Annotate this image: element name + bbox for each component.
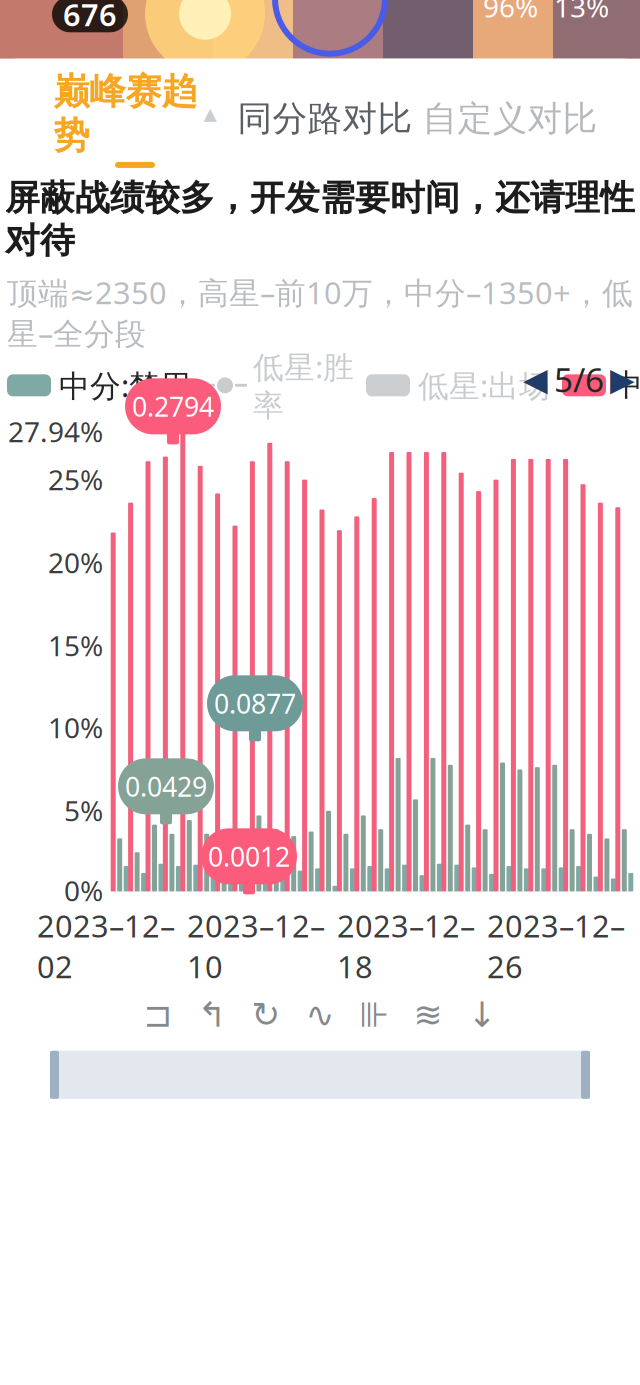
staticText: 低星:胜率 <box>253 346 354 424</box>
button[interactable]: 巅峰赛趋势 <box>37 83 232 155</box>
staticText: 0.2794 <box>132 389 214 424</box>
button[interactable]: Crop <box>134 993 182 1037</box>
button[interactable]: Layers <box>404 993 452 1037</box>
staticText: ▲ <box>203 104 216 124</box>
staticText: 屏蔽战绩较多，开发需要时间，还请理性对待 <box>5 177 635 262</box>
staticText: ≋ <box>413 995 442 1034</box>
staticText: 0% <box>64 872 103 909</box>
button[interactable]: Next page <box>610 361 635 397</box>
staticText: ↓ <box>467 995 496 1034</box>
button[interactable]: Undo <box>188 993 236 1037</box>
staticText: 5% <box>64 792 103 829</box>
button[interactable]: 同分路对比 <box>232 83 417 155</box>
staticText: 13% <box>554 0 609 25</box>
staticText: ⊪ <box>359 995 389 1034</box>
staticText: 25% <box>48 461 103 498</box>
staticText: 中 <box>612 366 640 404</box>
staticText: ▶ <box>610 361 635 397</box>
button[interactable]: Bar chart <box>350 993 398 1037</box>
staticText: ◀ <box>523 361 548 397</box>
staticText: 20% <box>48 544 103 581</box>
staticText: ↻ <box>251 995 280 1034</box>
staticText: 自定义对比 <box>422 97 597 140</box>
staticText: 顶端≈2350，高星–前10万，中分–1350+，低星–全分段 <box>7 272 633 353</box>
button[interactable]: Previous page <box>523 361 548 397</box>
staticText: 10% <box>48 709 103 746</box>
staticText: 2023–12–10 <box>187 905 325 987</box>
button[interactable]: Download <box>458 993 506 1037</box>
staticText: 0.0877 <box>214 686 296 721</box>
staticText: 同分路对比 <box>237 97 412 140</box>
staticText: 中分:禁用 <box>59 365 191 406</box>
staticText: 2023–12–26 <box>487 905 625 987</box>
staticText: 2023–12–18 <box>337 905 475 987</box>
staticText: 5/6 <box>554 357 604 401</box>
staticText: ↰ <box>197 995 226 1034</box>
staticText: 96% <box>483 0 538 25</box>
staticText: 676 <box>63 0 117 35</box>
button[interactable]: 自定义对比 <box>417 83 602 155</box>
staticText: ⊐ <box>143 995 172 1034</box>
staticText: 2023–12–02 <box>37 905 175 987</box>
staticText: 15% <box>48 627 103 664</box>
staticText: 0.0012 <box>208 839 290 874</box>
button[interactable]: Line chart <box>296 993 344 1037</box>
staticText: 巅峰赛趋势 <box>53 69 197 158</box>
staticText: ∿ <box>305 995 334 1034</box>
staticText: 0.0429 <box>125 769 207 804</box>
staticText: 27.94% <box>8 413 103 450</box>
staticText: 低星:出场 <box>418 365 550 406</box>
button[interactable]: Refresh <box>242 993 290 1037</box>
